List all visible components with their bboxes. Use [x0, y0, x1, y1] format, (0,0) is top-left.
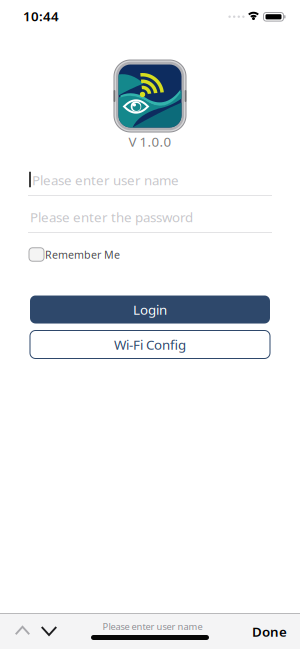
- staticText: Done: [252, 623, 287, 640]
- staticText: Please enter the password: [30, 208, 193, 226]
- staticText: V 1.0.0: [128, 133, 171, 150]
- staticText: Wi-Fi Config: [114, 336, 186, 353]
- staticText: Remember Me: [45, 247, 120, 262]
- staticText: Please enter user name: [32, 171, 179, 189]
- staticText: 10:44: [23, 7, 59, 25]
- staticText: Login: [133, 301, 167, 318]
- staticText: Please enter user name: [102, 620, 202, 633]
